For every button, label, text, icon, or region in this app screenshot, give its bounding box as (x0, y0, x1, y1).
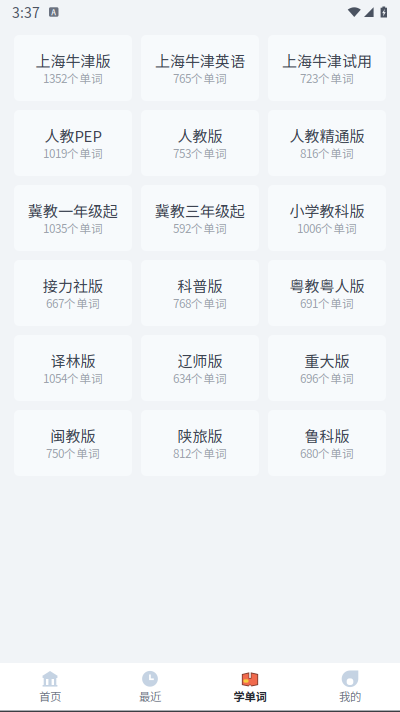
staticText: 691个单词 (300, 294, 354, 311)
button[interactable]: 辽师版 (141, 335, 259, 401)
staticText: 粤教粤人版 (289, 275, 364, 296)
button[interactable]: 接力社版 (14, 260, 132, 326)
button[interactable]: 上海牛津英语 (141, 35, 259, 101)
staticText: 学单词 (233, 688, 266, 704)
staticText: 696个单词 (300, 369, 354, 386)
button[interactable]: 重大版 (268, 335, 386, 401)
staticText: A (51, 7, 56, 17)
button[interactable]: 人教精通版 (268, 110, 386, 176)
staticText: 592个单词 (173, 219, 227, 236)
staticText: 小学教科版 (289, 200, 364, 221)
button[interactable]: 人教PEP (14, 110, 132, 176)
button[interactable]: 人教版 (141, 110, 259, 176)
staticText: 1019个单词 (43, 144, 103, 161)
button[interactable]: 科普版 (141, 260, 259, 326)
button[interactable]: 冀教一年级起 (14, 185, 132, 251)
staticText: 634个单词 (173, 369, 227, 386)
staticText: 冀教一年级起 (28, 200, 118, 221)
staticText: 译林版 (50, 350, 95, 371)
button[interactable]: 小学教科版 (268, 185, 386, 251)
staticText: 上海牛津英语 (155, 50, 245, 71)
staticText: 接力社版 (43, 275, 103, 296)
staticText: 753个单词 (173, 144, 227, 161)
button[interactable]: 粤教粤人版 (268, 260, 386, 326)
button[interactable]: 闽教版 (14, 410, 132, 476)
staticText: 1035个单词 (43, 219, 103, 236)
staticText: 上海牛津试用 (282, 50, 372, 71)
staticText: 闽教版 (50, 425, 95, 446)
staticText: 750个单词 (46, 444, 100, 461)
staticText: 768个单词 (173, 294, 227, 311)
button[interactable]: 最近 (100, 663, 200, 710)
staticText: 816个单词 (300, 144, 354, 161)
staticText: 鲁科版 (304, 425, 349, 446)
staticText: 人教PEP (44, 125, 101, 146)
button[interactable]: 首页 (0, 663, 100, 710)
staticText: 765个单词 (173, 69, 227, 86)
button[interactable]: 译林版 (14, 335, 132, 401)
staticText: 上海牛津版 (35, 50, 110, 71)
staticText: 3:37 (12, 2, 40, 22)
staticText: 人教精通版 (289, 125, 364, 146)
button[interactable]: 上海牛津版 (14, 35, 132, 101)
staticText: 723个单词 (300, 69, 354, 86)
staticText: 667个单词 (46, 294, 100, 311)
staticText: 1054个单词 (43, 369, 103, 386)
staticText: 人教版 (177, 125, 222, 146)
staticText: 812个单词 (173, 444, 227, 461)
staticText: 陕旅版 (177, 425, 222, 446)
staticText: 科普版 (177, 275, 222, 296)
staticText: 最近 (139, 688, 161, 704)
button[interactable]: 陕旅版 (141, 410, 259, 476)
staticText: 首页 (39, 688, 61, 704)
button[interactable]: 鲁科版 (268, 410, 386, 476)
button[interactable]: 学单词 (200, 663, 300, 710)
staticText: 我的 (339, 688, 361, 704)
button[interactable]: 上海牛津试用 (268, 35, 386, 101)
button[interactable]: 冀教三年级起 (141, 185, 259, 251)
staticText: 辽师版 (177, 350, 222, 371)
button[interactable]: 我的 (300, 663, 400, 710)
staticText: 冀教三年级起 (155, 200, 245, 221)
staticText: 1006个单词 (297, 219, 357, 236)
staticText: 680个单词 (300, 444, 354, 461)
staticText: 重大版 (304, 350, 349, 371)
staticText: 1352个单词 (43, 69, 103, 86)
